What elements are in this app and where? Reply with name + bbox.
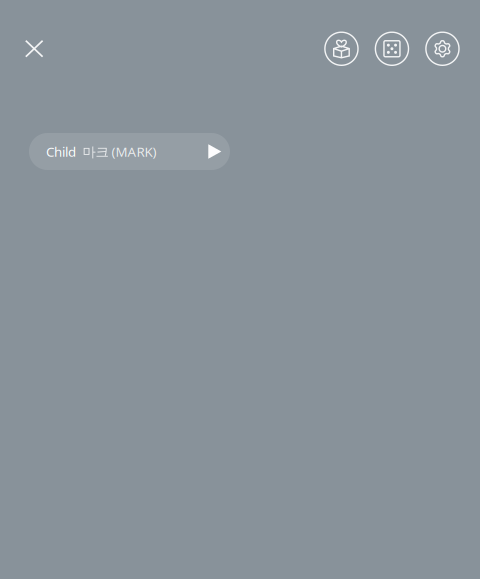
staticText: Child (46, 143, 76, 160)
staticText: 마크 (MARK) (82, 143, 156, 160)
button[interactable]: Close (12, 27, 56, 71)
button[interactable]: Child (29, 133, 230, 170)
button[interactable]: Scan (375, 31, 409, 66)
button[interactable]: Settings (425, 31, 460, 66)
button[interactable]: Care package (324, 31, 359, 66)
